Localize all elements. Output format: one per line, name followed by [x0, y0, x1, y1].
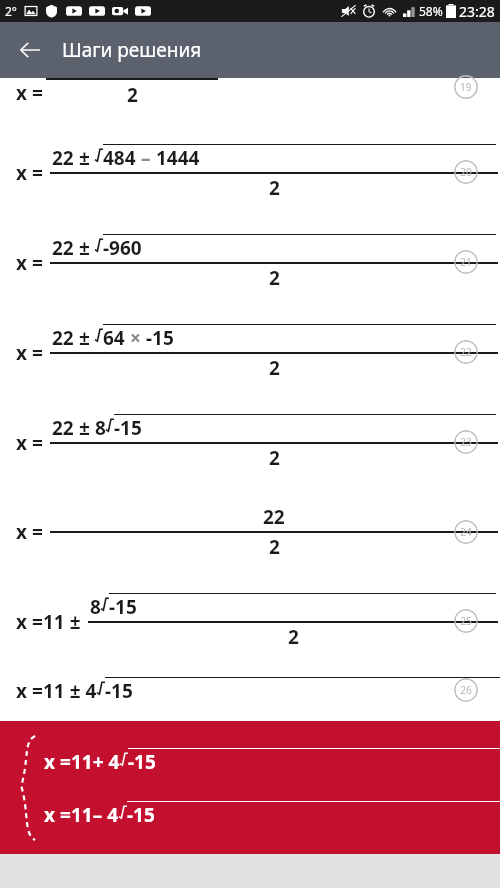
staticText: 22	[52, 415, 74, 441]
staticText: x =	[16, 609, 43, 635]
staticText: 11– 4	[71, 802, 119, 828]
staticText: 11 ±	[43, 609, 81, 635]
staticText: x =	[16, 80, 43, 106]
staticText: x =	[16, 430, 43, 456]
staticText: 1444	[156, 145, 200, 171]
staticText: –	[136, 145, 156, 171]
button[interactable]: Back	[6, 26, 54, 74]
staticText: x =	[16, 160, 43, 186]
staticText: -15	[127, 802, 155, 828]
staticText: 8	[90, 594, 101, 620]
staticText: 2	[288, 624, 299, 650]
button[interactable]: x =	[0, 397, 500, 487]
staticText: 22	[52, 235, 74, 261]
staticText: x =	[16, 340, 43, 366]
button[interactable]: x =	[0, 217, 500, 307]
staticText: 24	[460, 525, 472, 539]
staticText: -15	[114, 415, 142, 441]
staticText: 23	[460, 435, 472, 449]
staticText: 2	[269, 175, 280, 201]
staticText: 22	[263, 504, 285, 530]
staticText: 26	[460, 683, 472, 697]
staticText: 2	[269, 265, 280, 291]
staticText: 8	[95, 415, 106, 441]
staticText: -15	[105, 678, 133, 704]
button[interactable]: x =	[0, 307, 500, 397]
staticText: 2°	[5, 3, 18, 19]
staticText: 20	[460, 165, 472, 179]
staticText: x =	[44, 802, 71, 828]
staticText: 2	[269, 355, 280, 381]
button[interactable]: x =	[0, 487, 500, 577]
staticText: -15	[109, 594, 137, 620]
staticText: 25	[460, 614, 472, 628]
staticText: 19	[460, 80, 472, 94]
staticText: -15	[146, 325, 174, 351]
button[interactable]: x =	[0, 577, 500, 665]
button[interactable]: x =	[0, 127, 500, 217]
staticText: 22	[52, 145, 74, 171]
staticText: ±	[74, 415, 95, 441]
staticText: 2	[269, 534, 280, 560]
staticText: -960	[103, 235, 142, 261]
staticText: 2	[269, 445, 280, 471]
staticText: 22	[52, 325, 74, 351]
staticText: 2	[127, 82, 138, 108]
staticText: x =	[44, 749, 71, 775]
staticText: ±	[74, 235, 95, 261]
staticText: Шаги решения	[62, 37, 202, 63]
staticText: x =	[16, 519, 43, 545]
staticText: x =	[16, 678, 43, 704]
staticText: ×	[125, 325, 146, 351]
staticText: 11 ± 4	[43, 678, 97, 704]
staticText: 58%	[419, 3, 443, 19]
staticText: ±	[74, 325, 95, 351]
staticText: 23:28	[459, 2, 495, 21]
staticText: 21	[460, 255, 472, 269]
staticText: 484	[103, 145, 136, 171]
staticText: 22	[460, 345, 472, 359]
staticText: x =	[16, 250, 43, 276]
button[interactable]: x =	[0, 78, 500, 127]
button[interactable]: x =	[0, 665, 500, 715]
staticText: 11+ 4	[71, 749, 120, 775]
staticText: -15	[128, 749, 156, 775]
staticText: 64	[103, 325, 125, 351]
button[interactable]: x =	[0, 721, 500, 854]
staticText: ±	[74, 145, 95, 171]
